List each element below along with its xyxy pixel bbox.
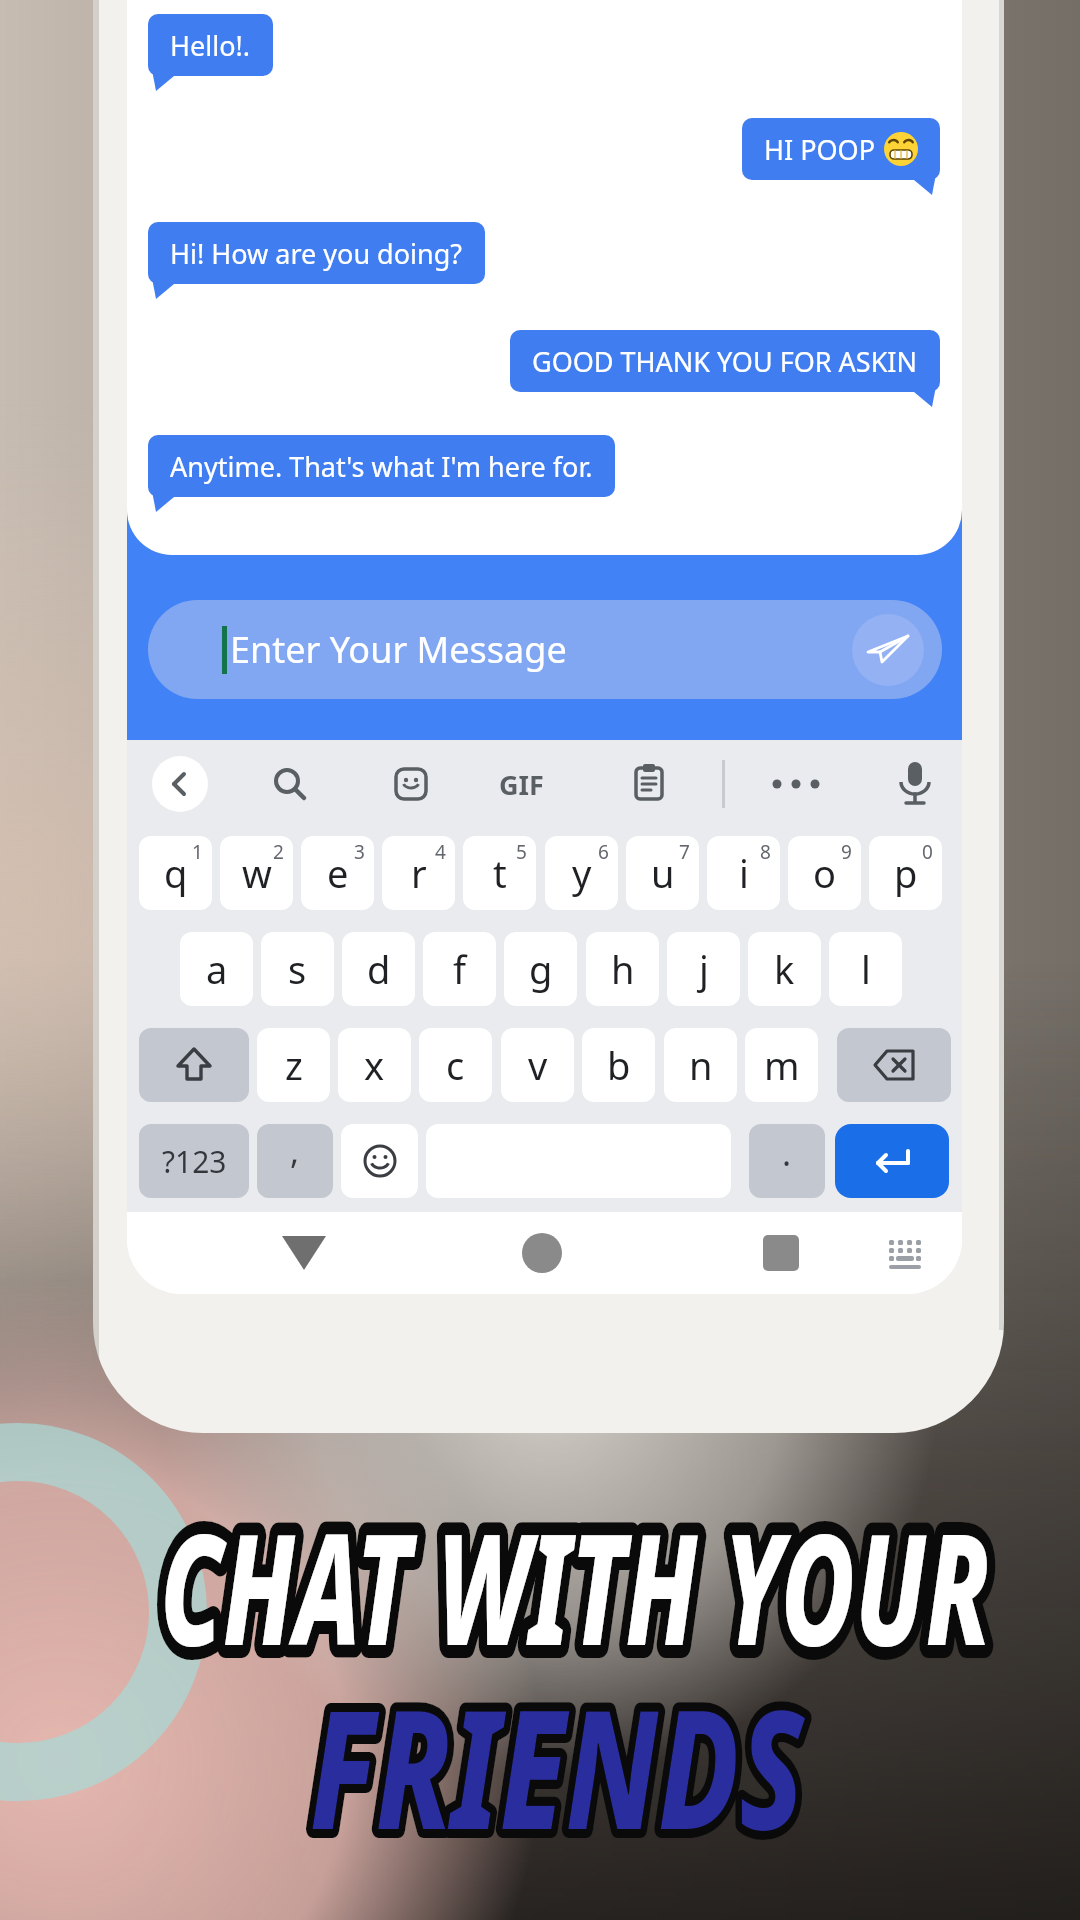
staticText: FRIENDS: [310, 1654, 804, 1877]
button[interactable]: HI POOP: [764, 118, 918, 180]
staticText: k: [774, 943, 795, 995]
button[interactable]: Hi! How are you doing?: [170, 222, 463, 284]
button[interactable]: m: [745, 1028, 818, 1102]
button[interactable]: [281, 1234, 327, 1272]
button[interactable]: [835, 1124, 949, 1198]
button[interactable]: i: [707, 836, 780, 910]
button[interactable]: y: [545, 836, 618, 910]
staticText: ,: [290, 1128, 300, 1174]
button[interactable]: g: [504, 932, 577, 1006]
staticText: CHAT WITH YOUR: [160, 1480, 990, 1690]
button[interactable]: p: [869, 836, 942, 910]
button[interactable]: r: [382, 836, 455, 910]
button[interactable]: .: [749, 1124, 825, 1198]
staticText: Hello!.: [170, 27, 251, 64]
staticText: s: [288, 943, 307, 995]
staticText: r: [411, 847, 427, 899]
staticText: w: [242, 847, 272, 899]
button[interactable]: v: [501, 1028, 574, 1102]
staticText: g: [529, 943, 553, 995]
staticText: 3: [354, 839, 365, 865]
staticText: p: [894, 847, 918, 899]
button[interactable]: [152, 756, 208, 812]
staticText: 8: [760, 839, 771, 865]
staticText: 9: [841, 839, 852, 865]
button[interactable]: q: [139, 836, 212, 910]
staticText: a: [206, 943, 228, 995]
staticText: f: [453, 943, 467, 995]
staticText: n: [689, 1039, 713, 1091]
staticText: d: [367, 943, 391, 995]
button[interactable]: [341, 1124, 418, 1198]
staticText: b: [607, 1039, 631, 1091]
button[interactable]: [898, 760, 932, 808]
staticText: 2: [273, 839, 284, 865]
button[interactable]: b: [582, 1028, 655, 1102]
staticText: Enter Your Message: [230, 625, 567, 674]
staticText: u: [651, 847, 675, 899]
button[interactable]: e: [301, 836, 374, 910]
button[interactable]: d: [342, 932, 415, 1006]
button[interactable]: ?123: [139, 1124, 249, 1198]
button[interactable]: j: [667, 932, 740, 1006]
button[interactable]: h: [586, 932, 659, 1006]
button[interactable]: Hello!.: [170, 14, 251, 76]
button[interactable]: z: [257, 1028, 330, 1102]
staticText: l: [861, 943, 871, 995]
staticText: m: [764, 1039, 800, 1091]
button[interactable]: t: [463, 836, 536, 910]
staticText: 5: [516, 839, 527, 865]
staticText: 6: [598, 839, 609, 865]
button[interactable]: k: [748, 932, 821, 1006]
button[interactable]: Enter Your Message: [148, 600, 942, 699]
staticText: FRIENDS: [310, 1654, 804, 1877]
button[interactable]: u: [626, 836, 699, 910]
button[interactable]: s: [261, 932, 334, 1006]
button[interactable]: l: [829, 932, 902, 1006]
staticText: HI POOP: [764, 131, 876, 168]
staticText: j: [699, 943, 709, 995]
button[interactable]: Anytime. That's what I'm here for.: [170, 435, 593, 497]
staticText: .: [782, 1130, 792, 1176]
button[interactable]: [852, 614, 924, 686]
button[interactable]: [272, 766, 308, 802]
button[interactable]: a: [180, 932, 253, 1006]
button[interactable]: n: [664, 1028, 737, 1102]
staticText: Hi! How are you doing?: [170, 235, 463, 272]
staticText: o: [813, 847, 836, 899]
button[interactable]: w: [220, 836, 293, 910]
staticText: 0: [922, 839, 933, 865]
button[interactable]: ,: [257, 1124, 333, 1198]
staticText: h: [611, 943, 635, 995]
staticText: i: [739, 847, 749, 899]
button[interactable]: [393, 766, 429, 802]
staticText: c: [446, 1039, 465, 1091]
staticText: q: [164, 847, 188, 899]
button[interactable]: x: [338, 1028, 411, 1102]
button[interactable]: o: [788, 836, 861, 910]
staticText: CHAT WITH YOUR: [160, 1480, 990, 1690]
button[interactable]: c: [419, 1028, 492, 1102]
button[interactable]: f: [423, 932, 496, 1006]
button[interactable]: [631, 764, 667, 800]
button[interactable]: GIF: [499, 766, 544, 803]
staticText: v: [528, 1039, 548, 1091]
button[interactable]: [885, 1238, 927, 1270]
staticText: 1: [192, 839, 203, 865]
button[interactable]: [763, 1235, 799, 1271]
staticText: x: [364, 1039, 385, 1091]
staticText: ?123: [162, 1141, 227, 1182]
staticText: GOOD THANK YOU FOR ASKIN: [532, 343, 918, 380]
button[interactable]: [522, 1233, 562, 1273]
staticText: Anytime. That's what I'm here for.: [170, 448, 593, 485]
button[interactable]: [139, 1028, 249, 1102]
staticText: t: [493, 847, 507, 899]
staticText: y: [572, 847, 592, 899]
staticText: z: [285, 1039, 303, 1091]
button[interactable]: [767, 776, 825, 792]
button[interactable]: [837, 1028, 951, 1102]
staticText: 4: [435, 839, 446, 865]
button[interactable]: GOOD THANK YOU FOR ASKIN: [532, 330, 918, 392]
staticText: 7: [679, 839, 690, 865]
